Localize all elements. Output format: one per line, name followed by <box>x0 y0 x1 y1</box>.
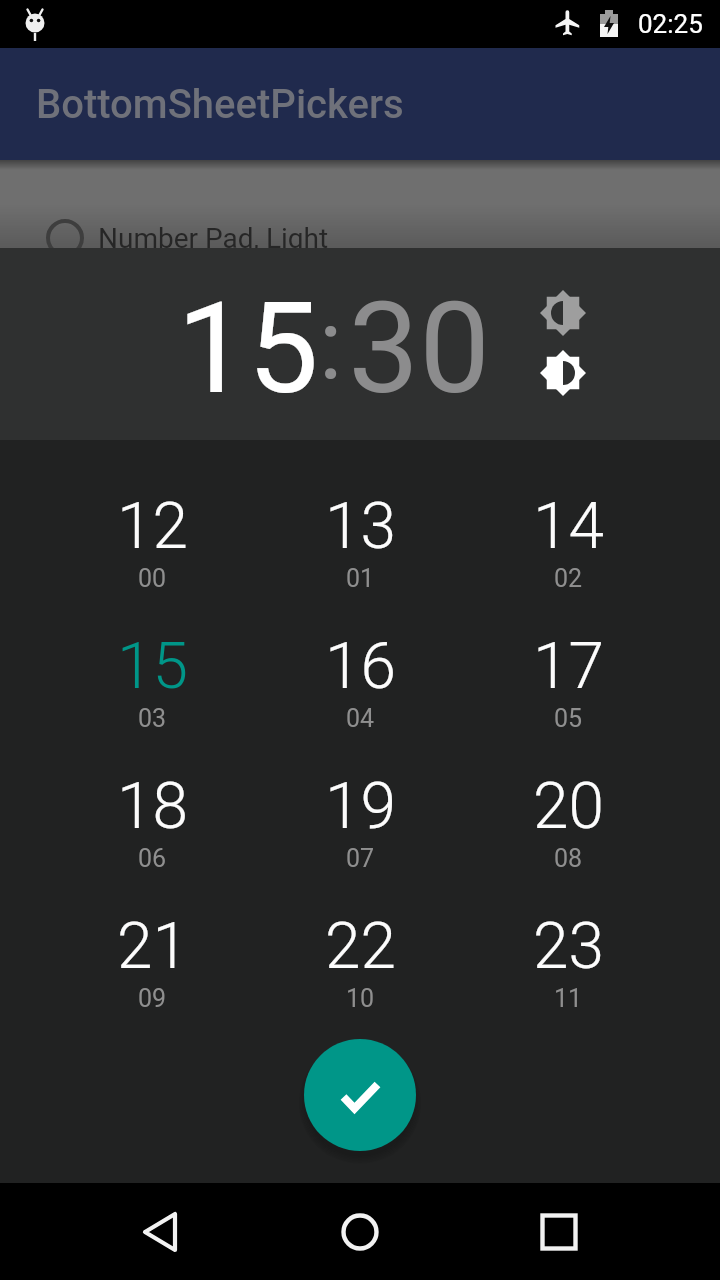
button[interactable]: 15 <box>62 616 242 748</box>
button[interactable] <box>538 288 588 338</box>
button[interactable]: 21 <box>62 896 242 1028</box>
staticText: 00 <box>138 564 167 593</box>
button[interactable]: Number Pad, Light <box>0 212 720 248</box>
staticText: 02 <box>554 564 583 593</box>
button[interactable] <box>320 1192 400 1272</box>
button[interactable]: 23 <box>478 896 658 1028</box>
staticText: 15:30 <box>177 275 490 423</box>
staticText: 21 <box>117 909 188 984</box>
button[interactable] <box>304 1039 416 1151</box>
button[interactable] <box>538 348 588 398</box>
button[interactable]: 15:30 <box>173 274 493 424</box>
button[interactable]: 18 <box>62 756 242 888</box>
staticText: 07 <box>346 844 375 873</box>
button[interactable]: 22 <box>270 896 450 1028</box>
staticText: 10 <box>346 984 375 1013</box>
staticText: 18 <box>117 769 188 844</box>
staticText: 23 <box>533 909 604 984</box>
staticText: 19 <box>325 769 396 844</box>
staticText: 12 <box>117 489 188 564</box>
button[interactable]: 17 <box>478 616 658 748</box>
staticText: 20 <box>533 769 604 844</box>
staticText: 22 <box>325 909 396 984</box>
staticText: 14 <box>533 489 604 564</box>
button[interactable]: 19 <box>270 756 450 888</box>
staticText: 15 <box>117 629 188 704</box>
staticText: BottomSheetPickers <box>36 81 404 128</box>
button[interactable] <box>519 1192 599 1272</box>
staticText: 17 <box>533 629 604 704</box>
staticText: 02:25 <box>638 9 703 39</box>
staticText: 11 <box>554 984 583 1013</box>
button[interactable] <box>120 1192 200 1272</box>
staticText: 08 <box>554 844 583 873</box>
staticText: 16 <box>325 629 396 704</box>
button[interactable]: 14 <box>478 476 658 608</box>
staticText: 13 <box>325 489 396 564</box>
staticText: 06 <box>138 844 167 873</box>
staticText: 05 <box>554 704 583 733</box>
staticText: 03 <box>138 704 167 733</box>
staticText: 09 <box>138 984 167 1013</box>
button[interactable]: 13 <box>270 476 450 608</box>
button[interactable]: 12 <box>62 476 242 608</box>
staticText: 01 <box>346 564 375 593</box>
staticText: 04 <box>346 704 375 733</box>
button[interactable]: 16 <box>270 616 450 748</box>
staticText: Number Pad, Light <box>98 222 329 248</box>
button[interactable]: 20 <box>478 756 658 888</box>
